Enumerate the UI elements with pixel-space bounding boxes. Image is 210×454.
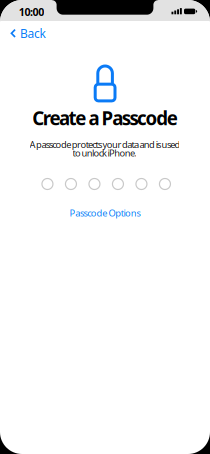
button[interactable]: Passcode Options: [60, 206, 150, 220]
staticText: Create a Passcode: [32, 106, 178, 130]
staticText: Back: [20, 25, 45, 41]
staticText: 10:00: [19, 5, 44, 19]
staticText: to unlock iPhone.: [73, 147, 137, 159]
staticText: A passcode protects your data and is use…: [29, 138, 180, 151]
staticText: Passcode Options: [70, 207, 140, 219]
button[interactable]: Back: [6, 25, 50, 41]
